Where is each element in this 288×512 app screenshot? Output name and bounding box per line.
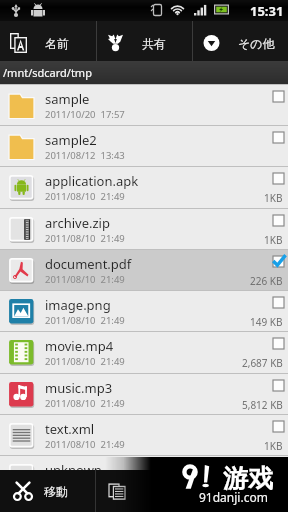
button[interactable]: Copy: [96, 470, 192, 512]
staticText: /mnt/sdcard/tmp: [3, 65, 92, 80]
staticText: 2,687 KB: [242, 356, 283, 370]
staticText: 149 KB: [250, 315, 283, 329]
staticText: 1KB: [264, 233, 283, 247]
staticText: music.mp3: [45, 379, 113, 397]
staticText: 2011/08/12 13:43: [45, 149, 125, 162]
staticText: 2011/08/10 21:49: [45, 273, 125, 286]
staticText: 2011/08/10 21:49: [45, 438, 125, 451]
staticText: 1KB: [264, 480, 283, 494]
staticText: 5,812 KB: [242, 398, 283, 412]
button[interactable]: text.xml: [0, 415, 288, 455]
staticText: 名前: [45, 36, 69, 51]
button[interactable]: Share: [97, 21, 192, 61]
button[interactable]: Select image.png: [273, 297, 284, 308]
staticText: document.pdf: [45, 255, 132, 273]
staticText: 2011/08/10 21:49: [45, 232, 125, 245]
staticText: 2011/08/10 21:49: [45, 355, 125, 368]
button[interactable]: sample: [0, 85, 288, 125]
staticText: sample: [45, 90, 90, 108]
staticText: 2011/08/10 21:49: [45, 190, 125, 203]
button[interactable]: 移動: [0, 470, 95, 512]
staticText: 游戏: [223, 463, 273, 494]
staticText: movie.mp4: [45, 337, 114, 355]
staticText: その他: [238, 36, 275, 51]
button[interactable]: Select text.xml: [273, 421, 284, 432]
staticText: sample2: [45, 131, 97, 149]
button[interactable]: document.pdf: [0, 250, 288, 290]
button[interactable]: More: [193, 21, 288, 61]
staticText: 2011/08/10 21:49: [45, 479, 125, 492]
button[interactable]: Select application.apk: [273, 173, 284, 184]
staticText: 2011/10/20 17:57: [45, 108, 125, 121]
button[interactable]: music.mp3: [0, 374, 288, 414]
staticText: image.png: [45, 296, 111, 314]
staticText: 共有: [142, 36, 166, 51]
button[interactable]: application.apk: [0, 167, 288, 207]
button[interactable]: Select archive.zip: [273, 215, 284, 226]
staticText: archive.zip: [45, 214, 110, 232]
button[interactable]: sample2: [0, 126, 288, 166]
staticText: 1KB: [264, 191, 283, 205]
button[interactable]: Select sample2: [273, 132, 284, 143]
button[interactable]: image.png: [0, 291, 288, 331]
button[interactable]: archive.zip: [0, 209, 288, 249]
staticText: text.xml: [45, 420, 95, 438]
button[interactable]: Select document.pdf: [273, 256, 284, 267]
staticText: 移動: [44, 484, 68, 499]
staticText: 91danji.com: [199, 489, 268, 505]
button[interactable]: Select music.mp3: [273, 380, 284, 391]
staticText: 1KB: [264, 439, 283, 453]
button[interactable]: Select movie.mp4: [273, 338, 284, 349]
staticText: unknown: [45, 461, 102, 479]
button[interactable]: Select sample: [273, 91, 284, 102]
staticText: 226 KB: [250, 274, 283, 288]
staticText: 2011/08/10 21:49: [45, 397, 125, 410]
staticText: 2011/08/10 21:49: [45, 314, 125, 327]
button[interactable]: Sort by name: [0, 21, 96, 61]
button[interactable]: movie.mp4: [0, 332, 288, 372]
button[interactable]: unknown: [0, 456, 288, 496]
staticText: application.apk: [45, 172, 139, 190]
staticText: 15:31: [250, 2, 284, 20]
